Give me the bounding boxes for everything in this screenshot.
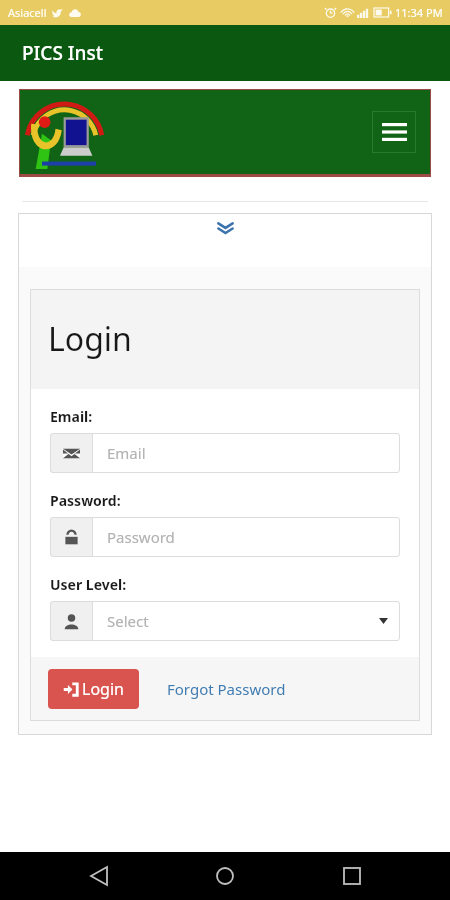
staticText: Email xyxy=(107,443,146,463)
button[interactable]: Login xyxy=(48,669,139,709)
button[interactable]: Password xyxy=(50,517,400,557)
staticText: Login xyxy=(82,678,124,700)
button[interactable]: Expand xyxy=(18,213,432,267)
staticText: Select xyxy=(107,611,149,631)
staticText: PICS Inst xyxy=(22,40,103,66)
staticText: 11:34 PM xyxy=(395,5,443,20)
button[interactable]: Home xyxy=(197,852,253,900)
button[interactable]: Email xyxy=(50,433,400,473)
button[interactable]: Recents xyxy=(324,852,380,900)
staticText: Login xyxy=(48,317,132,361)
button[interactable]: Select xyxy=(50,601,400,641)
button[interactable]: Back xyxy=(71,852,127,900)
button[interactable]: Menu xyxy=(372,111,416,153)
staticText: Email: xyxy=(50,407,93,426)
staticText: Asiacell xyxy=(8,5,47,20)
staticText: User Level: xyxy=(50,575,127,594)
staticText: Password xyxy=(107,527,175,547)
staticText: Password: xyxy=(50,491,121,510)
button[interactable]: Forgot Password xyxy=(167,675,286,703)
